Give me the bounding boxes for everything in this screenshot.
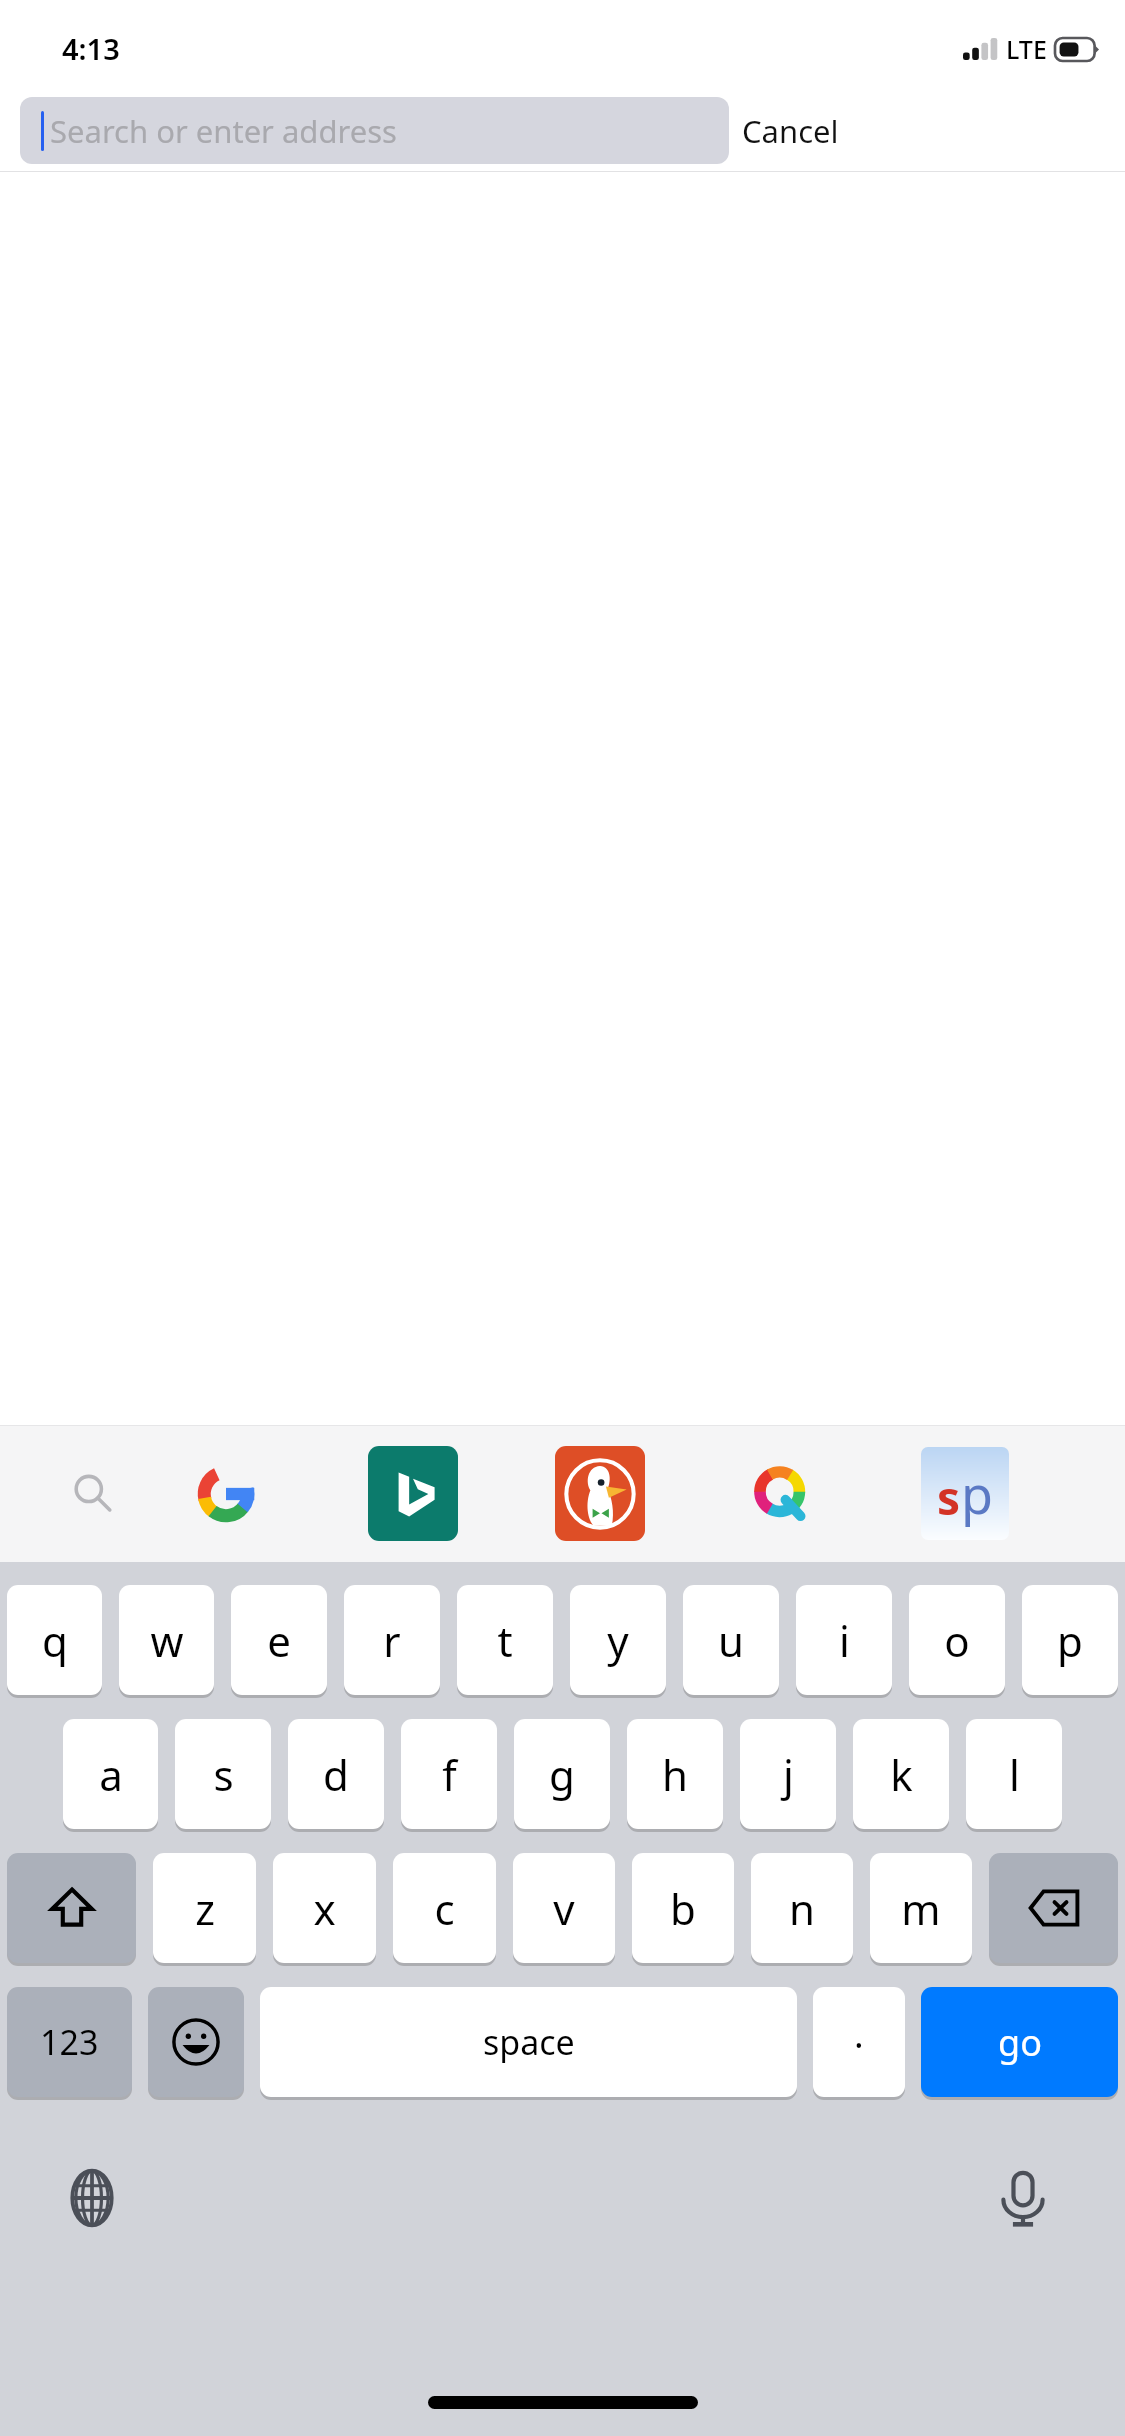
staticText: v: [553, 1880, 575, 1937]
staticText: u: [718, 1612, 744, 1669]
button[interactable]: Backspace: [989, 1853, 1118, 1963]
staticText: Cancel: [742, 110, 839, 152]
staticText: .: [854, 2010, 864, 2059]
staticText: c: [434, 1880, 455, 1937]
button[interactable]: Search engine: [726, 1425, 838, 1562]
staticText: 123: [40, 2019, 99, 2065]
staticText: k: [890, 1746, 913, 1803]
button[interactable]: h: [627, 1719, 723, 1829]
button[interactable]: Search engine: [357, 1425, 469, 1562]
button[interactable]: b: [632, 1853, 734, 1963]
button[interactable]: Search engine: [37, 1425, 149, 1562]
staticText: s: [937, 1466, 961, 1529]
button[interactable]: f: [401, 1719, 497, 1829]
staticText: w: [150, 1612, 184, 1669]
button[interactable]: Emoji: [148, 1987, 244, 2097]
staticText: h: [662, 1746, 688, 1803]
staticText: i: [839, 1612, 850, 1669]
staticText: go: [998, 2018, 1042, 2067]
button[interactable]: Shift: [7, 1853, 136, 1963]
staticText: d: [323, 1746, 349, 1803]
button[interactable]: l: [966, 1719, 1062, 1829]
button[interactable]: go: [921, 1987, 1118, 2097]
staticText: n: [789, 1880, 815, 1937]
staticText: b: [670, 1880, 696, 1937]
staticText: l: [1009, 1746, 1020, 1803]
button[interactable]: c: [393, 1853, 496, 1963]
button[interactable]: Search engine: [909, 1425, 1021, 1562]
staticText: g: [549, 1746, 575, 1803]
staticText: r: [383, 1612, 401, 1669]
button[interactable]: z: [153, 1853, 256, 1963]
staticText: s: [213, 1746, 234, 1803]
button[interactable]: p: [1022, 1585, 1118, 1695]
button[interactable]: Search engine: [170, 1425, 282, 1562]
button[interactable]: space: [260, 1987, 797, 2097]
staticText: f: [442, 1746, 457, 1803]
button[interactable]: Cancel: [729, 110, 839, 152]
button[interactable]: t: [457, 1585, 553, 1695]
button[interactable]: a: [63, 1719, 158, 1829]
button[interactable]: Search engine: [544, 1425, 656, 1562]
button[interactable]: o: [909, 1585, 1005, 1695]
staticText: LTE: [1006, 32, 1047, 66]
button[interactable]: q: [7, 1585, 102, 1695]
button[interactable]: v: [513, 1853, 615, 1963]
staticText: Search or enter address: [50, 110, 397, 152]
staticText: y: [607, 1612, 629, 1669]
staticText: e: [267, 1612, 291, 1669]
button[interactable]: s: [175, 1719, 271, 1829]
staticText: o: [944, 1612, 970, 1669]
button[interactable]: u: [683, 1585, 779, 1695]
staticText: t: [497, 1612, 513, 1669]
button[interactable]: e: [231, 1585, 327, 1695]
staticText: m: [901, 1880, 941, 1937]
button[interactable]: m: [870, 1853, 972, 1963]
button[interactable]: k: [853, 1719, 949, 1829]
button[interactable]: d: [288, 1719, 384, 1829]
button[interactable]: y: [570, 1585, 666, 1695]
button[interactable]: n: [751, 1853, 853, 1963]
button[interactable]: x: [273, 1853, 376, 1963]
staticText: z: [195, 1880, 215, 1937]
button[interactable]: Dictate: [971, 2146, 1075, 2250]
button[interactable]: r: [344, 1585, 440, 1695]
staticText: q: [42, 1612, 68, 1669]
staticText: p: [1057, 1612, 1083, 1669]
button[interactable]: Search or enter address: [20, 97, 729, 164]
button[interactable]: 123: [7, 1987, 132, 2097]
staticText: j: [783, 1746, 794, 1803]
button[interactable]: i: [796, 1585, 892, 1695]
staticText: 4:13: [62, 29, 120, 68]
button[interactable]: period: [813, 1987, 905, 2097]
staticText: p: [961, 1458, 993, 1529]
button[interactable]: j: [740, 1719, 836, 1829]
button[interactable]: w: [119, 1585, 214, 1695]
button[interactable]: g: [514, 1719, 610, 1829]
button[interactable]: Switch keyboard: [40, 2146, 144, 2250]
staticText: x: [313, 1880, 336, 1937]
staticText: space: [483, 2019, 575, 2065]
staticText: a: [99, 1746, 123, 1803]
